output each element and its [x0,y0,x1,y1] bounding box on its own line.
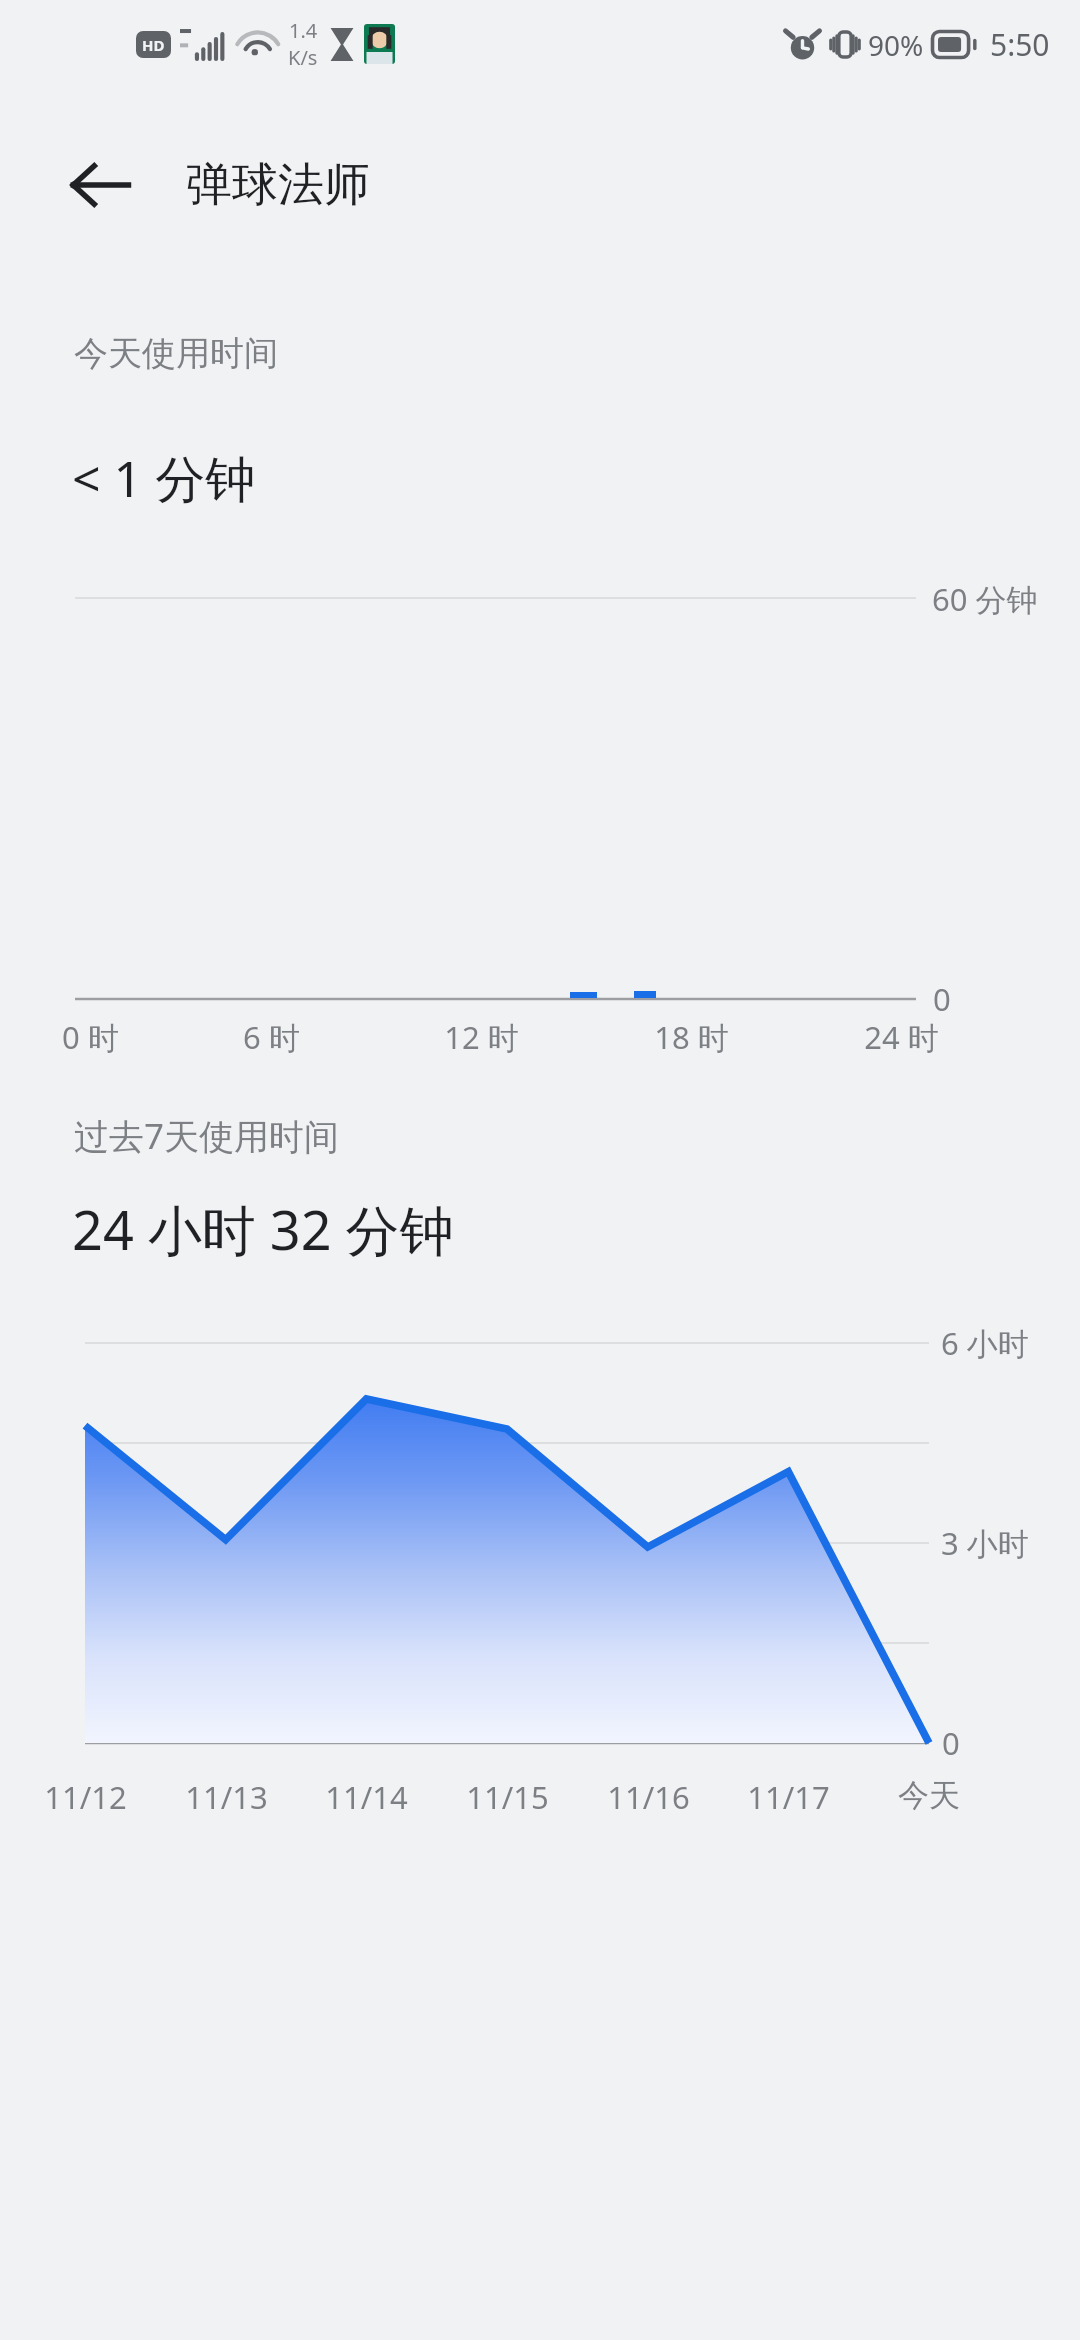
staticText: 今天 [898,1776,960,1815]
staticText: 0 时 [62,1016,119,1058]
staticText: 1.4 [289,17,318,44]
staticText: 5:50 [990,24,1050,65]
staticText: 18 时 [654,1016,729,1058]
staticText: 11/12 [44,1776,127,1818]
staticText: 60 分钟 [932,578,1038,620]
staticText: 11/14 [325,1776,408,1818]
staticText: 24 小时 32 分钟 [72,1192,454,1266]
staticText: 0 [933,978,951,1020]
staticText: 弹球法师 [186,156,370,214]
staticText: 6 时 [243,1016,300,1058]
staticText: 11/16 [607,1776,690,1818]
button[interactable]: 返回 [50,137,150,233]
staticText: 11/17 [747,1776,830,1818]
staticText: 11/15 [466,1776,549,1818]
staticText: 3 小时 [941,1522,1029,1564]
staticText: 6 小时 [941,1322,1029,1364]
staticText: 90% [868,26,924,64]
staticText: 0 [942,1722,960,1764]
staticText: 过去7天使用时间 [74,1112,340,1160]
staticText: 24 时 [864,1016,939,1058]
staticText: < 1 分钟 [72,444,256,512]
staticText: 12 时 [444,1016,519,1058]
staticText: 11/13 [185,1776,268,1818]
staticText: HD [142,35,165,55]
staticText: 今天使用时间 [74,332,278,375]
staticText: K/s [288,44,318,71]
